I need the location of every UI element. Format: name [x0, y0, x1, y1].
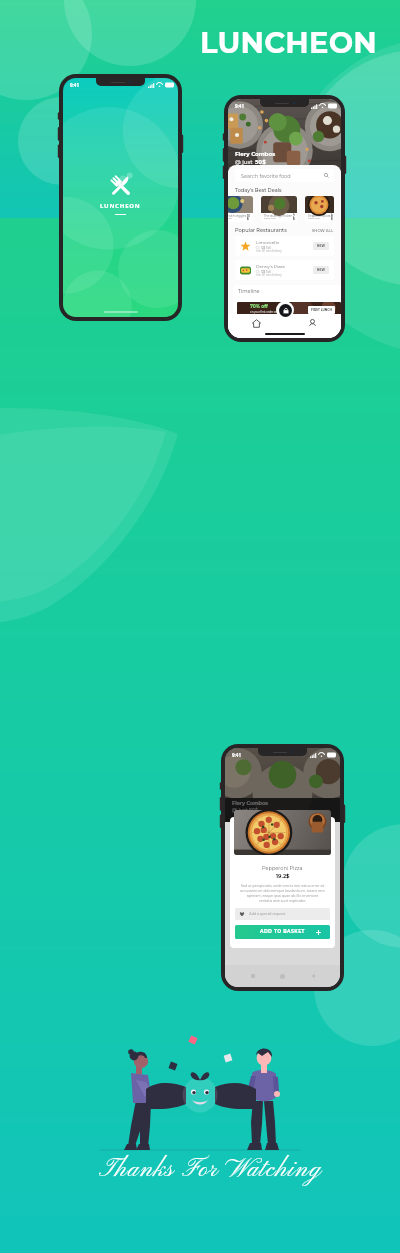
staticText: Fiery Combos [235, 151, 276, 158]
staticText: 12$ Toll [261, 246, 271, 249]
staticText: min 30 min delivery [256, 249, 282, 252]
staticText: Bistro Cafe [308, 217, 320, 220]
button[interactable]: ADD TO BASKET [235, 925, 330, 939]
staticText: Salad with veggies [228, 214, 247, 217]
staticText: 17$ [293, 211, 294, 220]
staticText: Fiery Combos [232, 800, 268, 806]
staticText: 70% off [250, 304, 268, 310]
button[interactable]: NEW [317, 268, 325, 272]
staticText: Limoncello [256, 240, 280, 245]
staticText: The stuffing chicken [264, 214, 293, 217]
button[interactable]: The stuffing chicken [261, 196, 297, 222]
staticText: Denny's Pizza [256, 264, 285, 269]
button[interactable]: Basket [276, 301, 294, 319]
staticText: Pepperoni Pizza [262, 865, 303, 871]
staticText: 50$ [255, 159, 266, 166]
staticText: @ just 50$ [232, 807, 259, 813]
button[interactable]: Search favorite food [235, 169, 334, 182]
staticText: Bistro Cafe [264, 217, 276, 220]
staticText: 9:41 [232, 752, 241, 758]
staticText: @ just [235, 159, 255, 166]
staticText: 9:41 [70, 82, 79, 88]
staticText: Pepperoni pizza [308, 214, 331, 217]
staticText: 12$ Toll [261, 270, 271, 273]
staticText: Thanks For Watching [99, 1154, 323, 1185]
staticText: 9:41 [235, 103, 244, 109]
staticText: min 30 min delivery [256, 273, 282, 276]
button[interactable]: Limoncello [235, 236, 334, 256]
staticText: LUNCHEON [200, 25, 377, 60]
staticText: 10$ [247, 214, 250, 220]
button[interactable]: SHOW ALL [312, 228, 334, 233]
button[interactable]: FIRST LUNCH [311, 308, 332, 312]
button[interactable]: Home [228, 314, 284, 338]
staticText: Bistro Cafe [228, 217, 232, 220]
button[interactable]: Denny's Pizza [235, 260, 334, 280]
staticText: Sed ut perspiciatis unde omnis iste natu… [240, 884, 325, 903]
staticText: NEW [317, 244, 325, 248]
button[interactable]: Profile [284, 314, 341, 338]
button[interactable]: NEW [317, 244, 325, 248]
staticText: on your first order only [250, 310, 280, 313]
button[interactable]: Add a special request [235, 908, 330, 920]
button[interactable]: Pepperoni pizza [305, 196, 334, 222]
staticText: 19.2$ [276, 873, 290, 880]
staticText: LUNCHEON [100, 202, 141, 210]
staticText: Add a special request [249, 912, 286, 916]
staticText: Search favorite food [241, 173, 291, 179]
staticText: NEW [317, 268, 325, 272]
staticText: Popular Restaurants [235, 227, 287, 233]
staticText: Timeline [238, 288, 260, 294]
staticText: Today's Best Deals [235, 187, 282, 193]
button[interactable]: Salad with veggies [228, 196, 253, 222]
staticText: ADD TO BASKET [260, 929, 305, 935]
staticText: FIRST LUNCH [311, 308, 332, 312]
